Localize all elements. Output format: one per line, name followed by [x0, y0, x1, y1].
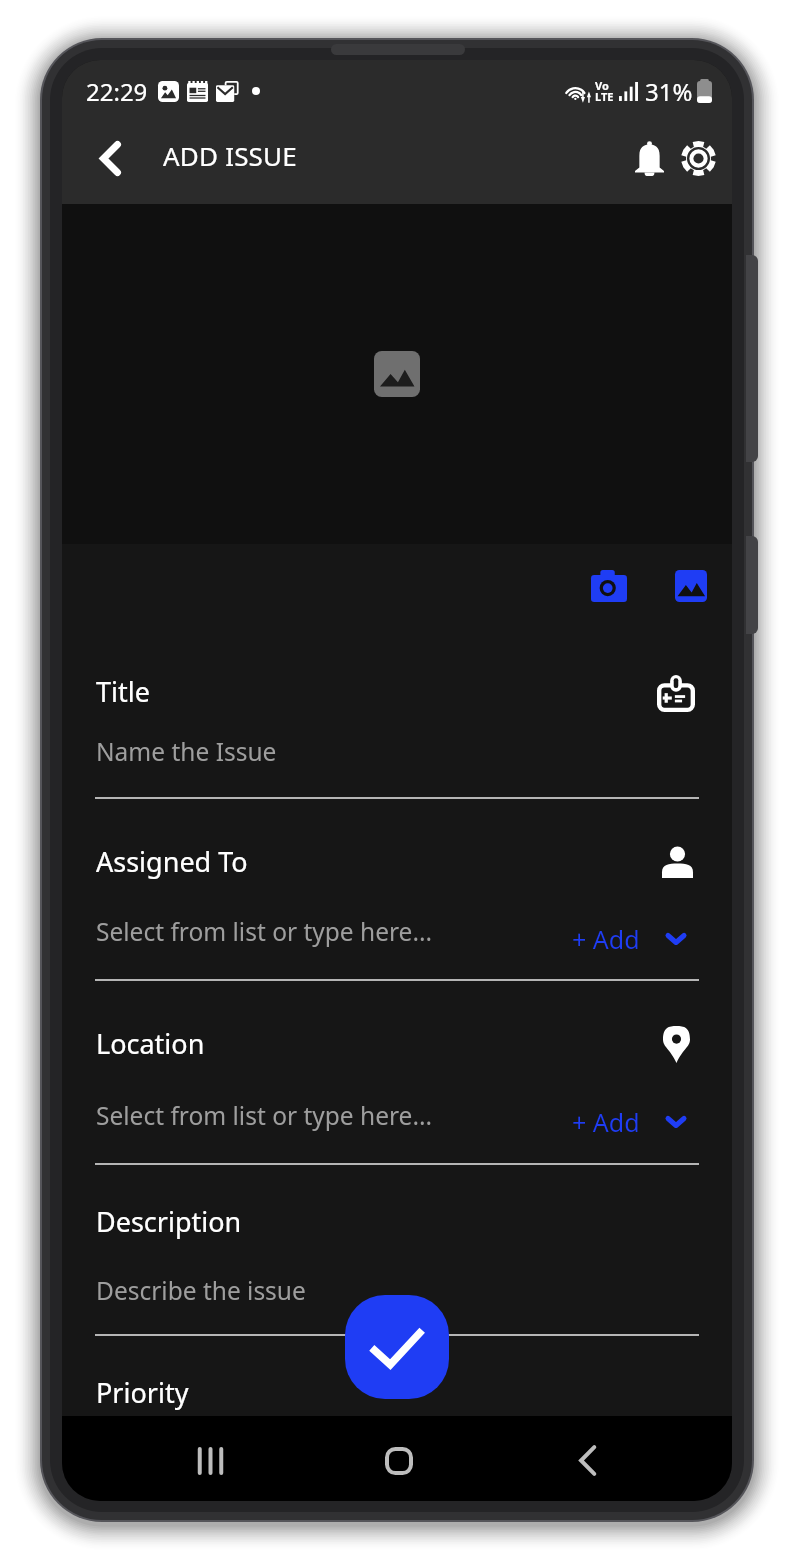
button[interactable]: Home [304, 1418, 493, 1501]
staticText: Priority [96, 1374, 189, 1411]
staticText: 31% [645, 75, 693, 108]
staticText: 22:29 [86, 75, 148, 108]
button[interactable]: Save issue [345, 1295, 449, 1399]
button[interactable]: Location field [95, 1086, 699, 1166]
staticText: Select from list or type here... [96, 915, 433, 948]
staticText: Location [96, 1025, 205, 1062]
button[interactable]: Notifications [620, 129, 678, 187]
staticText: Title [96, 673, 150, 710]
button[interactable]: Take photo [580, 557, 638, 615]
button[interactable]: Description field [95, 1260, 699, 1336]
button[interactable]: Assigned To field [95, 902, 699, 982]
staticText: Name the Issue [96, 735, 277, 768]
button[interactable]: Settings [669, 129, 727, 187]
button[interactable]: Title field [95, 720, 699, 800]
button[interactable]: Navigate back [81, 129, 139, 187]
staticText: Describe the issue [96, 1274, 306, 1307]
button[interactable]: Assignee [658, 843, 696, 881]
staticText: Vo LTE [595, 78, 614, 105]
button[interactable]: Back [493, 1418, 682, 1501]
staticText: Select from list or type here... [96, 1099, 433, 1132]
button[interactable]: Pick from gallery [662, 557, 720, 615]
button[interactable]: + Add [572, 922, 687, 956]
button[interactable]: Location [657, 1025, 695, 1063]
staticText: + Add [572, 1105, 640, 1139]
button[interactable]: Scan badge [654, 671, 698, 715]
staticText: Assigned To [96, 843, 248, 880]
staticText: ADD ISSUE [163, 138, 297, 173]
staticText: Description [96, 1203, 242, 1240]
button[interactable]: Recents [116, 1418, 304, 1501]
staticText: + Add [572, 922, 640, 956]
button[interactable]: + Add [572, 1105, 687, 1139]
